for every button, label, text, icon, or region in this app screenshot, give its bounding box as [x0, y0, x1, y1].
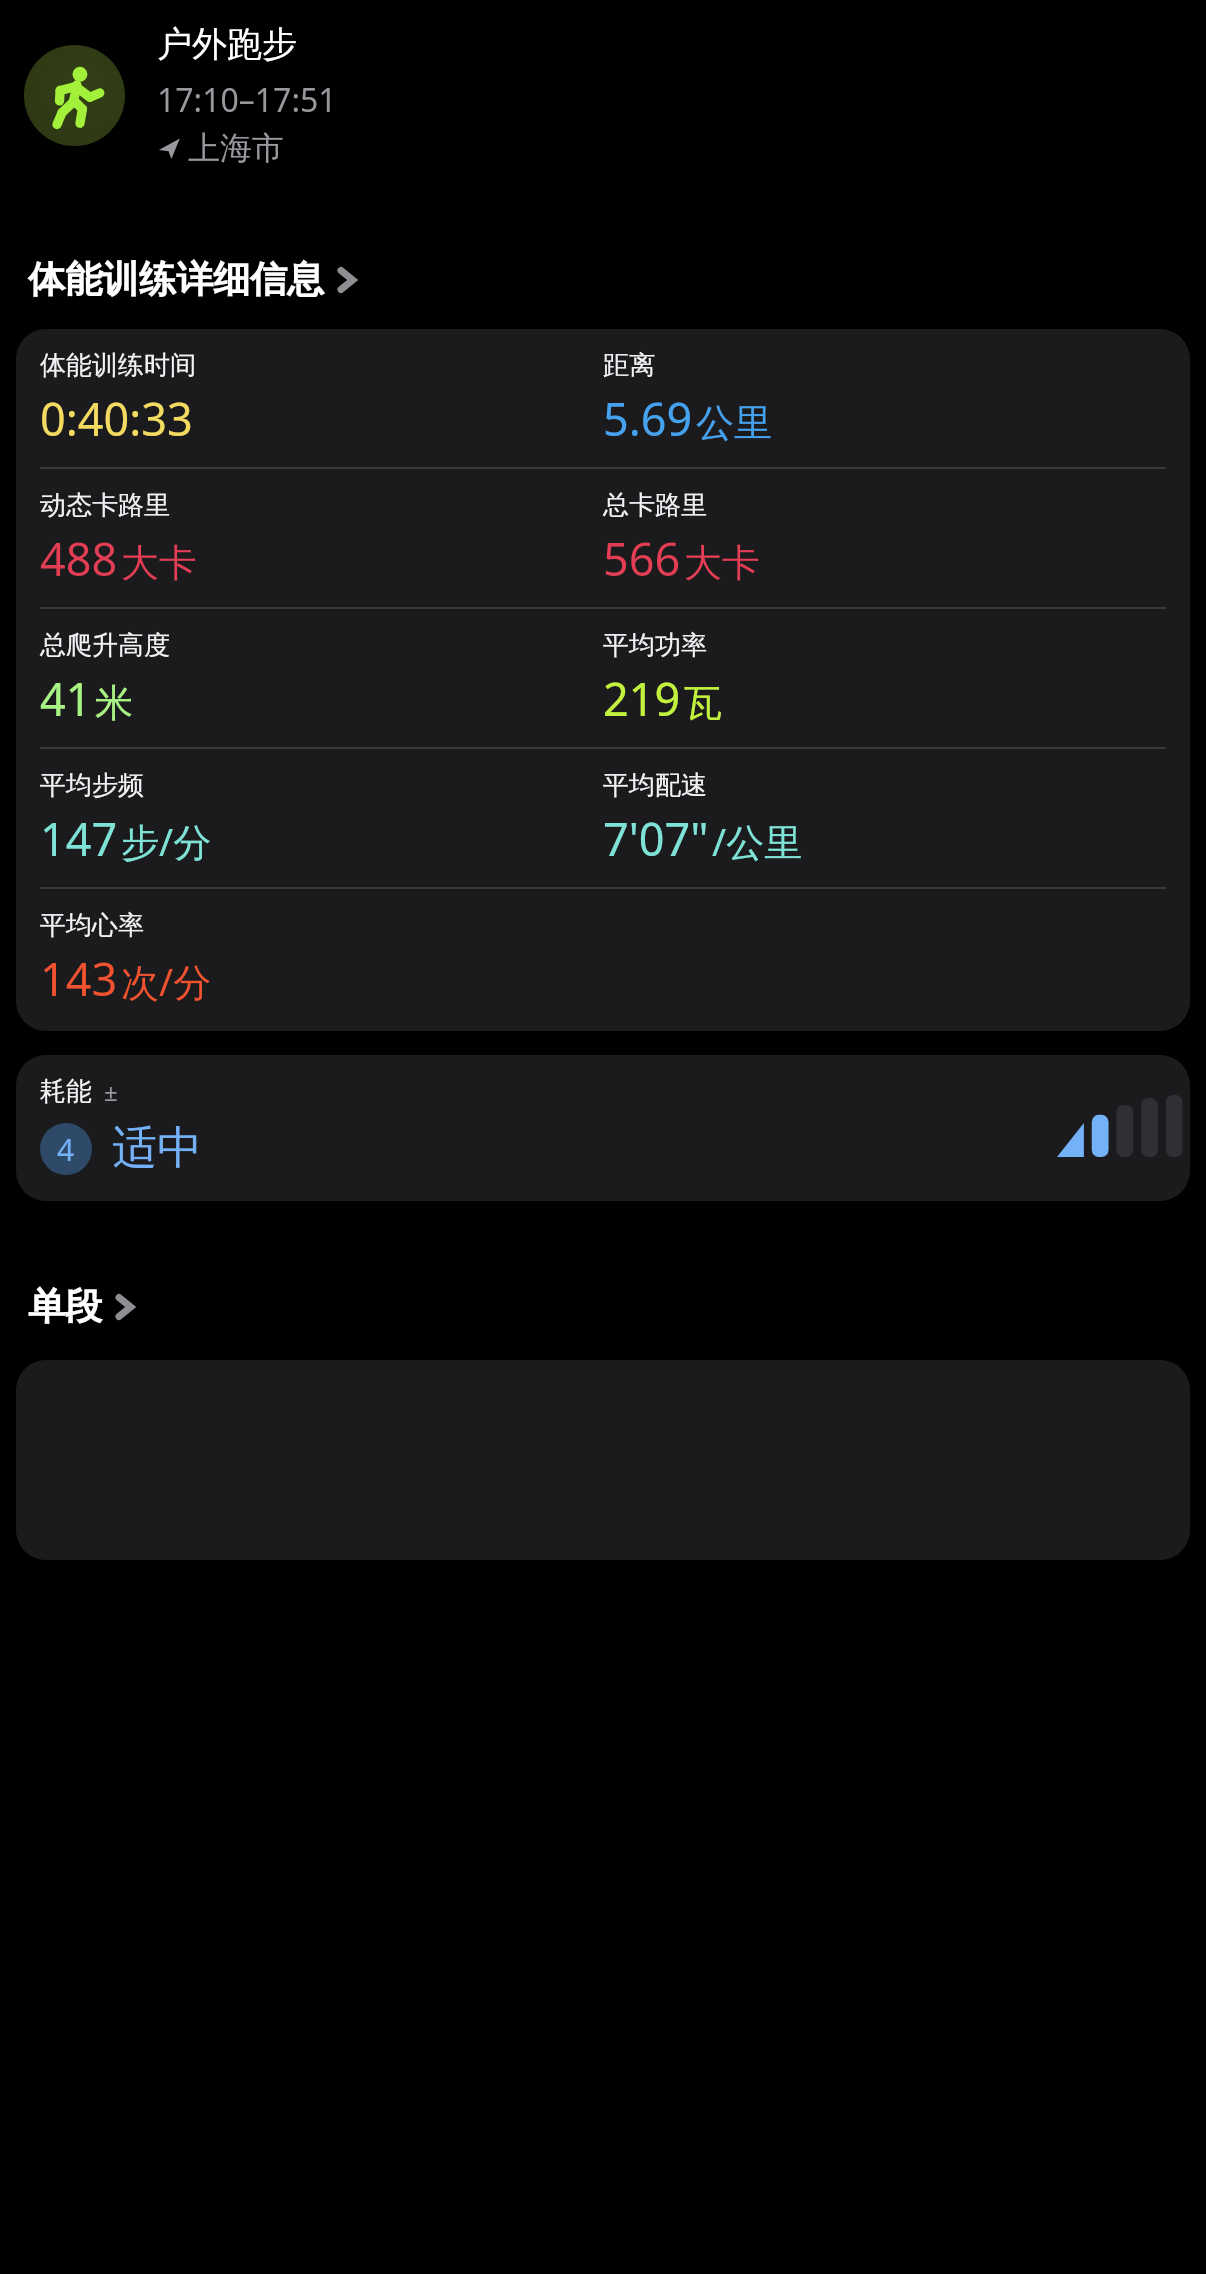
staticText: 7'07" — [603, 808, 709, 869]
staticText: /公里 — [712, 815, 803, 867]
staticText: 适中 — [112, 1120, 202, 1177]
staticText: 平均步频 — [40, 769, 144, 802]
staticText: 总爬升高度 — [40, 629, 170, 662]
staticText: 体能训练时间 — [40, 349, 196, 382]
button[interactable]: 体能训练详细信息 — [28, 256, 360, 303]
staticText: 0:40:33 — [40, 388, 193, 449]
button[interactable]: 单段 — [28, 1283, 138, 1330]
staticText: 平均配速 — [603, 769, 707, 802]
staticText: 219 — [603, 668, 681, 729]
staticText: 户外跑步 — [157, 22, 297, 66]
staticText: 体能训练详细信息 — [28, 256, 324, 303]
staticText: ± — [104, 1075, 118, 1108]
staticText: 41 — [40, 668, 92, 729]
button[interactable]: 耗能 — [16, 1055, 1190, 1201]
staticText: 平均心率 — [40, 909, 144, 942]
staticText: 单段 — [28, 1283, 102, 1330]
staticText: 488 — [40, 528, 118, 589]
staticText: 大卡 — [684, 539, 760, 587]
staticText: 4 — [57, 1129, 75, 1170]
staticText: 耗能 — [40, 1075, 92, 1108]
staticText: 5.69 — [603, 388, 693, 449]
staticText: 566 — [603, 528, 681, 589]
staticText: 平均功率 — [603, 629, 707, 662]
button[interactable]: 体能训练时间 — [16, 329, 1190, 1031]
button[interactable]: 户外跑步 — [24, 22, 1206, 168]
staticText: 公里 — [696, 399, 772, 447]
staticText: 上海市 — [188, 128, 284, 168]
other: Effort level chart — [1057, 1095, 1162, 1157]
staticText: 动态卡路里 — [40, 489, 170, 522]
staticText: 次/分 — [121, 955, 212, 1007]
staticText: 米 — [95, 679, 133, 727]
staticText: 大卡 — [121, 539, 197, 587]
staticText: 步/分 — [121, 815, 212, 867]
staticText: 147 — [40, 808, 118, 869]
staticText: 总卡路里 — [603, 489, 707, 522]
staticText: 瓦 — [684, 679, 722, 727]
staticText: 17:10–17:51 — [157, 78, 337, 122]
staticText: 距离 — [603, 349, 655, 382]
staticText: 143 — [40, 948, 118, 1009]
